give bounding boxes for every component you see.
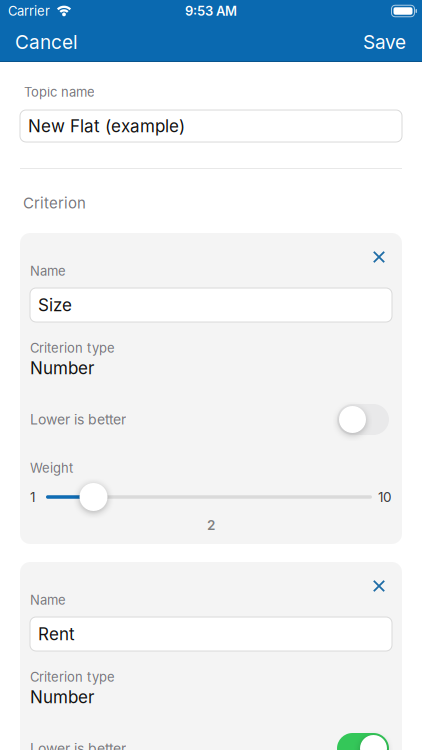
staticText: Carrier <box>8 3 50 19</box>
staticText: Number <box>30 358 94 378</box>
staticText: Lower is better <box>30 740 126 750</box>
staticText: Criterion type <box>30 669 115 685</box>
staticText: New Flat (example) <box>28 116 185 136</box>
staticText: Rent <box>38 624 75 644</box>
button[interactable]: Save <box>363 30 422 53</box>
staticText: 2 <box>207 517 215 533</box>
staticText: 1 <box>30 489 35 505</box>
staticText: 9:53 AM <box>185 3 237 19</box>
staticText: Number <box>30 687 94 707</box>
button[interactable]: Rent <box>30 617 392 651</box>
staticText: Weight <box>30 460 73 476</box>
button[interactable]: Lower is better <box>337 733 389 750</box>
button[interactable]: Size <box>30 288 392 322</box>
staticText: 10 <box>378 489 392 505</box>
button[interactable]: Remove criterion <box>373 562 402 592</box>
staticText: Name <box>30 263 66 279</box>
staticText: Lower is better <box>30 411 126 428</box>
button[interactable]: Cancel <box>0 30 78 53</box>
button[interactable]: Weight slider <box>46 483 74 511</box>
staticText: Topic name <box>24 84 95 100</box>
button[interactable]: Lower is better <box>337 404 389 435</box>
button[interactable]: Remove criterion <box>373 233 402 263</box>
staticText: Name <box>30 592 66 608</box>
staticText: Save <box>363 30 406 53</box>
button[interactable]: New Flat (example) <box>20 110 402 142</box>
staticText: Criterion <box>23 194 86 212</box>
staticText: Size <box>38 295 72 315</box>
staticText: Criterion type <box>30 340 115 356</box>
staticText: Cancel <box>15 30 78 53</box>
